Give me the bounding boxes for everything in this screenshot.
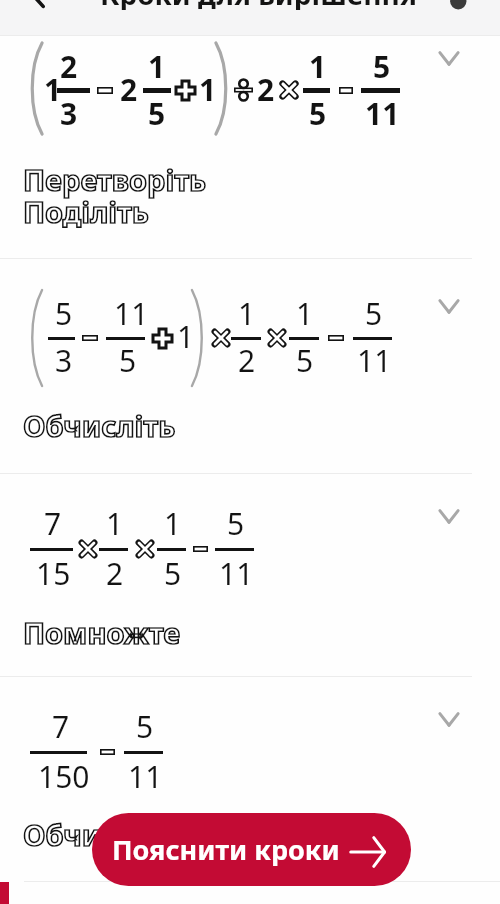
staticText: 1 xyxy=(106,503,124,544)
staticText: 1 xyxy=(309,46,327,87)
staticText: 2 xyxy=(120,69,138,110)
staticText: 1 xyxy=(164,503,182,544)
staticText: 2 xyxy=(60,46,78,87)
staticText: 11 xyxy=(357,340,392,381)
staticText: 1 xyxy=(296,293,314,334)
staticText: 5 xyxy=(227,503,245,544)
staticText: Поділіть xyxy=(23,192,150,231)
staticText: 5 xyxy=(164,553,182,594)
staticText: 5 xyxy=(296,340,314,381)
staticText: 1 xyxy=(148,46,166,87)
staticText: 5 xyxy=(55,293,73,334)
staticText: 7 xyxy=(52,706,70,747)
button[interactable]: Back xyxy=(15,0,63,13)
staticText: 5 xyxy=(373,46,391,87)
staticText: 5 xyxy=(148,93,166,134)
staticText: Помножте xyxy=(23,613,181,652)
staticText: 5 xyxy=(136,706,154,747)
button[interactable]: Expand step xyxy=(427,493,471,537)
staticText: 1 xyxy=(238,293,256,334)
staticText: 1 xyxy=(199,69,217,110)
button[interactable]: Expand step xyxy=(427,696,471,740)
staticText: 3 xyxy=(60,93,78,134)
staticText: 3 xyxy=(55,340,73,381)
staticText: 15 xyxy=(36,553,71,594)
staticText: 2 xyxy=(106,553,124,594)
staticText: Перетворіть xyxy=(23,160,207,199)
button[interactable]: Expand step xyxy=(427,35,471,79)
staticText: Перетворіть xyxy=(23,160,207,199)
button[interactable]: Пояснити кроки xyxy=(92,813,411,886)
staticText: Кроки для вирішення xyxy=(100,0,417,10)
staticText: 5 xyxy=(309,93,327,134)
staticText: 11 xyxy=(114,293,149,334)
staticText: 7 xyxy=(44,503,62,544)
staticText: Помножте xyxy=(23,613,181,652)
staticText: Обчисліть xyxy=(23,406,176,445)
staticText: 1 xyxy=(44,69,62,110)
button[interactable]: Expand step xyxy=(427,283,471,327)
staticText: 150 xyxy=(38,756,90,797)
staticText: Обчисліть xyxy=(23,815,176,854)
staticText: 5 xyxy=(119,340,137,381)
staticText: 11 xyxy=(365,93,400,134)
button[interactable]: Search xyxy=(436,0,482,13)
staticText: Поділіть xyxy=(23,192,150,231)
staticText: 2 xyxy=(257,69,275,110)
staticText: 11 xyxy=(128,756,163,797)
staticText: 2 xyxy=(238,340,256,381)
staticText: Обчисліть xyxy=(23,815,176,854)
staticText: 11 xyxy=(219,553,254,594)
staticText: Пояснити кроки xyxy=(112,831,340,868)
staticText: 5 xyxy=(365,293,383,334)
staticText: 1 xyxy=(177,316,195,357)
staticText: Обчисліть xyxy=(23,406,176,445)
